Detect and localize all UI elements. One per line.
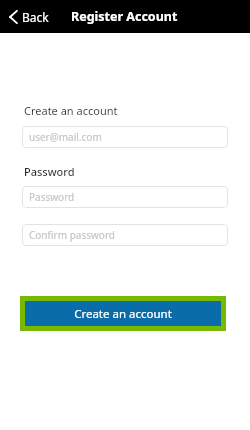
button[interactable]: Confirm password (22, 224, 228, 246)
staticText: Password (24, 164, 75, 179)
staticText: Confirm password (29, 228, 115, 242)
button[interactable]: Password (22, 186, 228, 208)
staticText: Create an account (24, 103, 118, 118)
staticText: user@mail.com (29, 130, 102, 144)
staticText: Create an account (74, 306, 172, 322)
staticText: Password (29, 190, 75, 204)
button[interactable]: Create an account (20, 296, 226, 331)
staticText: Back (22, 9, 49, 25)
button[interactable]: user@mail.com (22, 126, 228, 148)
button[interactable]: Back (7, 5, 51, 29)
staticText: Register Account (71, 8, 178, 25)
